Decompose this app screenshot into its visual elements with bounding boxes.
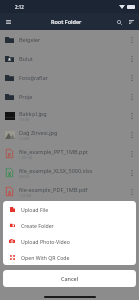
button[interactable]: Belgeler bbox=[0, 30, 139, 49]
button[interactable]: More options bbox=[125, 144, 139, 163]
button[interactable]: Bulut bbox=[0, 49, 139, 68]
staticText: 7,6 MB bbox=[19, 137, 30, 141]
staticText: Create Folder bbox=[21, 222, 54, 229]
staticText: Belgeler bbox=[19, 36, 41, 43]
staticText: Upload Photo-Video bbox=[21, 238, 70, 245]
button[interactable]: More options bbox=[125, 68, 139, 87]
staticText: Upload File bbox=[21, 206, 49, 213]
button[interactable]: Open With QR Code bbox=[3, 249, 136, 265]
staticText: 584 KB bbox=[19, 175, 30, 179]
button[interactable]: Create Folder bbox=[3, 217, 136, 233]
staticText: file_example_XLSX_5000.xlsx bbox=[19, 167, 93, 174]
button[interactable]: More options bbox=[125, 106, 139, 125]
staticText: Balıkçıl.jpg bbox=[19, 110, 47, 117]
button[interactable]: More options bbox=[125, 182, 139, 201]
staticText: 1,04 MB bbox=[19, 194, 32, 198]
staticText: file_example_PPT_1MB.ppt bbox=[19, 148, 88, 155]
button[interactable]: Fotoğraflar bbox=[0, 68, 139, 87]
button[interactable]: Upload File bbox=[3, 201, 136, 217]
staticText: X bbox=[8, 171, 12, 177]
staticText: Root Folder bbox=[51, 18, 82, 25]
staticText: Bulut bbox=[19, 55, 33, 62]
staticText: 1,005 KB bbox=[19, 156, 33, 160]
staticText: 756 KB bbox=[19, 118, 30, 122]
staticText: 2:12 bbox=[15, 4, 24, 10]
button[interactable]: Cancel bbox=[3, 270, 136, 287]
button[interactable]: X bbox=[0, 163, 139, 182]
button[interactable]: More options bbox=[125, 87, 139, 106]
staticText: file-example_PDF_1MB.pdf bbox=[19, 186, 88, 193]
staticText: Fotoğraflar bbox=[19, 74, 48, 81]
button[interactable]: More options bbox=[125, 30, 139, 49]
button[interactable]: A bbox=[0, 182, 139, 201]
staticText: Dağ Zirvesi.jpg bbox=[19, 129, 58, 136]
button[interactable]: Search bbox=[113, 16, 125, 28]
button[interactable]: Open navigation menu bbox=[2, 15, 15, 28]
button[interactable]: P bbox=[0, 144, 139, 163]
staticText: P bbox=[8, 152, 11, 158]
button[interactable]: More options bbox=[125, 125, 139, 144]
staticText: A bbox=[8, 190, 12, 196]
staticText: Cancel bbox=[61, 275, 79, 282]
staticText: Open With QR Code bbox=[21, 254, 70, 261]
button[interactable]: Upload Photo-Video bbox=[3, 233, 136, 249]
button[interactable]: Proje bbox=[0, 87, 139, 106]
staticText: Proje bbox=[19, 93, 33, 100]
button[interactable]: Balıkçıl.jpg bbox=[0, 106, 139, 125]
button[interactable]: Dağ Zirvesi.jpg bbox=[0, 125, 139, 144]
button[interactable]: More options bbox=[125, 163, 139, 182]
button[interactable]: More options bbox=[125, 49, 139, 68]
button[interactable]: Sort bbox=[125, 16, 137, 28]
